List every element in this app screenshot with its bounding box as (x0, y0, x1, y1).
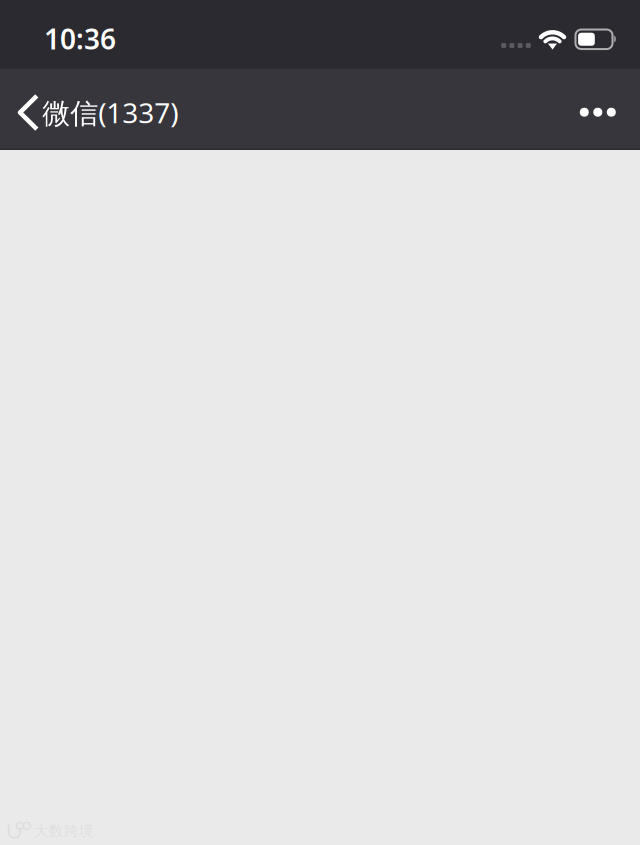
button[interactable]: 更多 (555, 72, 640, 153)
button[interactable]: 返回 (0, 69, 196, 150)
staticText: 大数跨境 (34, 822, 94, 840)
staticText: 10:36 (44, 20, 116, 57)
staticText: 微信(1337) (42, 94, 178, 131)
